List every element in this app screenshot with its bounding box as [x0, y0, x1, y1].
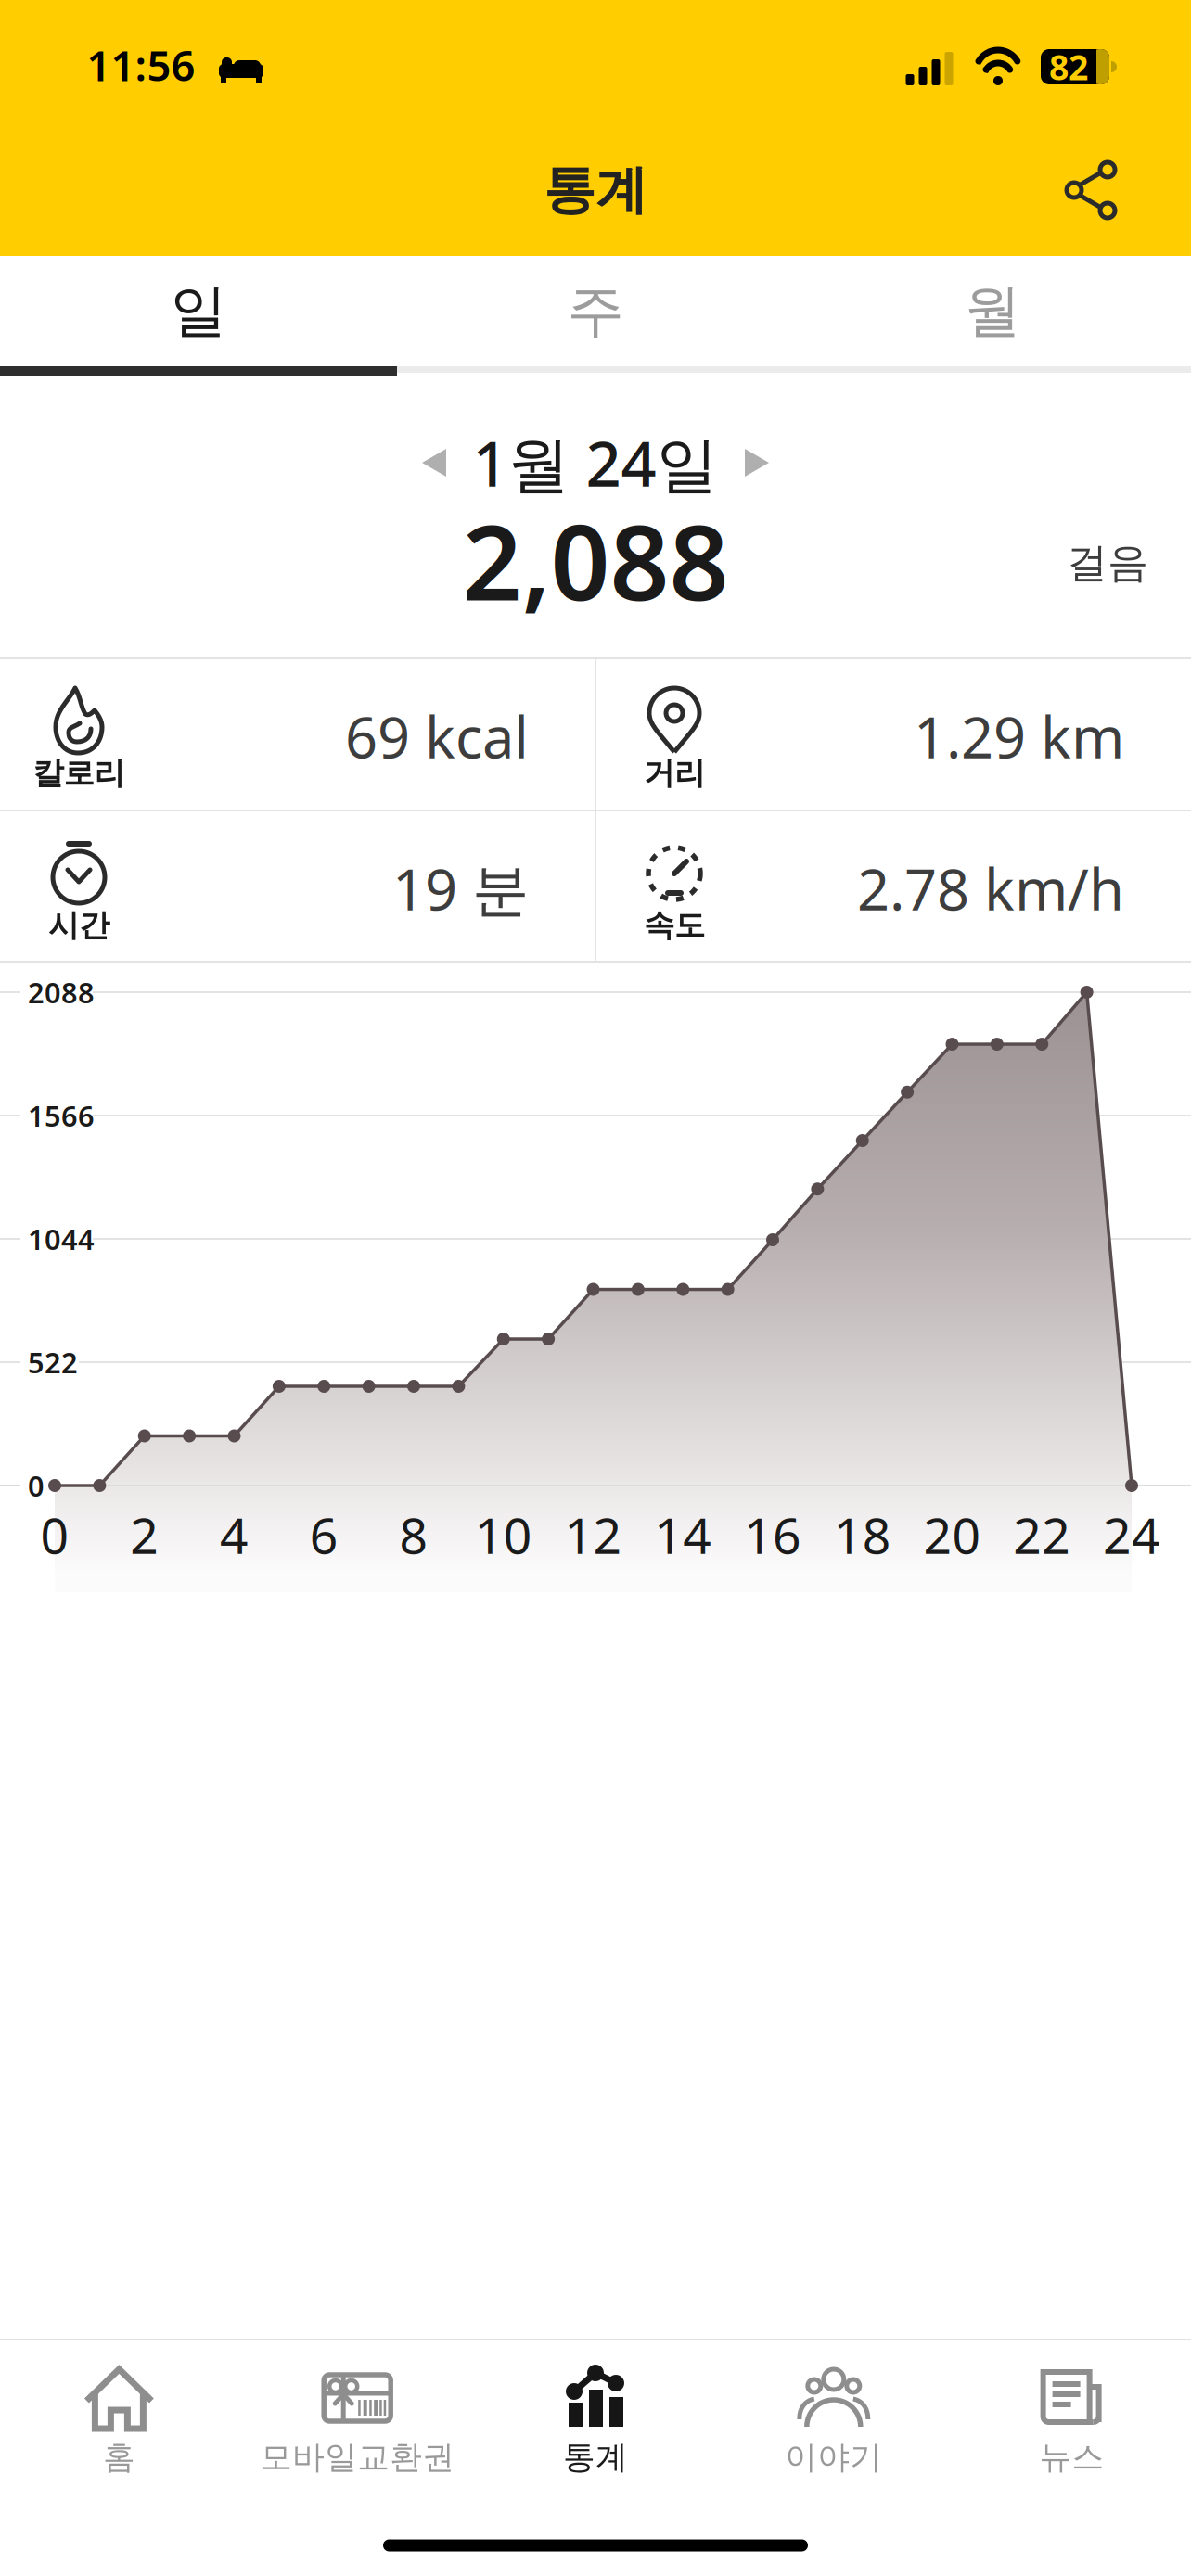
staticText: 6: [310, 1502, 338, 1567]
staticText: 1.29 km: [914, 699, 1124, 774]
staticText: 0: [40, 1502, 69, 1567]
button[interactable]: 이전 날짜: [403, 430, 465, 495]
staticText: 모바일교환권: [260, 2438, 455, 2477]
button[interactable]: 홈: [0, 2281, 238, 2494]
staticText: 10: [475, 1502, 532, 1567]
staticText: 월: [964, 276, 1021, 346]
staticText: 12: [564, 1502, 622, 1567]
staticText: 1월 24일: [473, 422, 718, 504]
button[interactable]: 통계: [476, 2281, 715, 2494]
staticText: 24: [1103, 1502, 1160, 1567]
staticText: 4: [220, 1502, 249, 1567]
staticText: 통계: [563, 2438, 628, 2477]
button[interactable]: 주: [397, 256, 794, 366]
button[interactable]: 뉴스: [953, 2281, 1191, 2494]
staticText: 속도: [644, 906, 705, 944]
staticText: 칼로리: [33, 754, 125, 792]
staticText: 1566: [28, 1097, 95, 1134]
staticText: 16: [744, 1502, 801, 1567]
staticText: 주: [567, 276, 624, 346]
staticText: 일: [170, 276, 227, 346]
button[interactable]: 이야기: [715, 2281, 953, 2494]
staticText: 이야기: [785, 2438, 882, 2477]
staticText: 522: [28, 1343, 78, 1381]
button[interactable]: 다음 날짜: [726, 430, 788, 495]
button[interactable]: 공유: [1049, 148, 1133, 232]
staticText: 11:56: [87, 37, 195, 93]
staticText: 홈: [103, 2438, 135, 2477]
staticText: 2.78 km/h: [857, 851, 1124, 926]
staticText: 1044: [28, 1220, 95, 1258]
button[interactable]: 모바일교환권: [238, 2281, 476, 2494]
staticText: 82: [1049, 44, 1088, 90]
staticText: 18: [834, 1502, 891, 1567]
staticText: 거리: [644, 754, 705, 792]
staticText: 19 분: [392, 851, 529, 926]
staticText: 걸음: [1067, 538, 1148, 588]
staticText: 시간: [48, 906, 109, 944]
staticText: 뉴스: [1039, 2438, 1104, 2477]
staticText: 2,088: [462, 491, 729, 629]
staticText: 22: [1013, 1502, 1071, 1567]
staticText: 69 kcal: [345, 699, 529, 774]
staticText: 0: [28, 1467, 45, 1504]
staticText: 8: [399, 1502, 428, 1567]
button[interactable]: 월: [794, 256, 1191, 366]
staticText: 통계: [544, 158, 647, 222]
staticText: 14: [654, 1502, 712, 1567]
staticText: 2: [130, 1502, 159, 1567]
button[interactable]: 일: [0, 256, 397, 366]
staticText: 2088: [28, 973, 95, 1011]
staticText: 20: [923, 1502, 981, 1567]
